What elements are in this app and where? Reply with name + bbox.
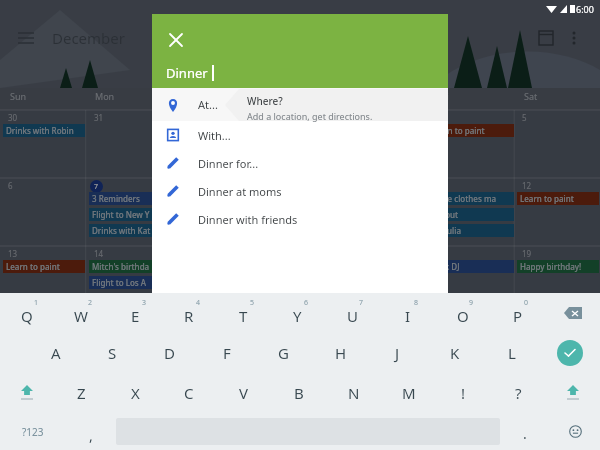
staticText: Flight to New Y bbox=[92, 209, 150, 220]
button[interactable]: Shift bbox=[0, 373, 54, 413]
button[interactable]: Dinner with friends bbox=[152, 205, 448, 233]
staticText: Sun bbox=[10, 90, 27, 102]
staticText: J bbox=[395, 343, 400, 363]
button[interactable]: G bbox=[255, 333, 312, 373]
staticText: Dinner bbox=[166, 64, 208, 82]
button[interactable]: K bbox=[426, 333, 483, 373]
staticText: U bbox=[347, 306, 358, 326]
staticText: S bbox=[108, 343, 117, 363]
button[interactable]: With... bbox=[152, 121, 448, 149]
staticText: 6 bbox=[8, 180, 13, 191]
staticText: Learn to paint bbox=[520, 193, 574, 204]
staticText: O bbox=[457, 306, 469, 326]
button[interactable]: Y bbox=[270, 293, 325, 333]
staticText: M bbox=[402, 383, 416, 403]
button[interactable]: Today bbox=[532, 24, 560, 52]
button[interactable]: Q bbox=[0, 293, 54, 333]
staticText: Mitch's birthda bbox=[92, 261, 150, 272]
staticText: 14 bbox=[94, 248, 104, 259]
button[interactable]: H bbox=[312, 333, 369, 373]
button[interactable]: Emoji bbox=[550, 413, 600, 450]
button[interactable]: J bbox=[369, 333, 426, 373]
button[interactable]: Close bbox=[162, 26, 190, 54]
staticText: 9 bbox=[469, 298, 474, 308]
staticText: N bbox=[348, 383, 360, 403]
staticText: R bbox=[184, 306, 194, 326]
staticText: 31 bbox=[94, 112, 104, 123]
button[interactable]: More options bbox=[560, 24, 588, 52]
button[interactable]: V bbox=[216, 373, 271, 413]
button[interactable]: Done bbox=[540, 333, 600, 373]
staticText: Dinner with friends bbox=[198, 212, 298, 227]
button[interactable]: S bbox=[84, 333, 141, 373]
staticText: ? bbox=[515, 383, 522, 403]
button[interactable]: L bbox=[483, 333, 540, 373]
button[interactable]: A bbox=[27, 333, 84, 373]
button[interactable]: ?123 bbox=[0, 413, 66, 450]
button[interactable]: U bbox=[325, 293, 380, 333]
staticText: X bbox=[131, 383, 140, 403]
staticText: , bbox=[89, 426, 93, 445]
button[interactable]: O bbox=[435, 293, 490, 333]
button[interactable]: B bbox=[271, 373, 326, 413]
button[interactable]: , bbox=[66, 413, 116, 450]
staticText: . bbox=[523, 424, 527, 443]
button[interactable]: N bbox=[326, 373, 381, 413]
staticText: 30 bbox=[8, 112, 18, 123]
staticText: I bbox=[405, 306, 411, 326]
staticText: Fri bbox=[438, 90, 449, 102]
staticText: et Julia bbox=[435, 225, 461, 236]
staticText: Dinner at moms bbox=[198, 184, 282, 199]
staticText: C bbox=[184, 383, 194, 403]
staticText: 3 bbox=[142, 298, 147, 308]
staticText: 4 bbox=[196, 298, 201, 308]
staticText: Wed bbox=[266, 90, 285, 102]
button[interactable]: D bbox=[141, 333, 198, 373]
staticText: E bbox=[131, 306, 140, 326]
staticText: Sat bbox=[524, 90, 538, 102]
staticText: H bbox=[335, 343, 347, 363]
button[interactable]: ? bbox=[491, 373, 546, 413]
staticText: Dinner for... bbox=[198, 156, 259, 171]
staticText: 13 bbox=[8, 248, 18, 259]
button[interactable]: Backspace bbox=[545, 293, 600, 333]
staticText: Flight to Los A bbox=[92, 277, 147, 288]
staticText: ook DJ bbox=[435, 261, 460, 272]
staticText: W bbox=[74, 306, 88, 326]
staticText: L bbox=[508, 343, 516, 363]
button[interactable]: . bbox=[500, 413, 550, 450]
button[interactable]: Dinner for... bbox=[152, 149, 448, 177]
button[interactable]: E bbox=[108, 293, 162, 333]
staticText: tage clothes ma bbox=[435, 193, 497, 204]
button[interactable]: Shift bbox=[546, 373, 600, 413]
button[interactable]: F bbox=[198, 333, 255, 373]
staticText: December bbox=[52, 28, 125, 48]
staticText: 12 bbox=[522, 180, 532, 191]
button[interactable]: At... bbox=[152, 88, 448, 121]
button[interactable]: Z bbox=[54, 373, 108, 413]
button[interactable]: X bbox=[108, 373, 162, 413]
staticText: 7 bbox=[359, 298, 364, 308]
button[interactable]: C bbox=[162, 373, 216, 413]
button[interactable]: M bbox=[381, 373, 436, 413]
staticText: 6:00 bbox=[576, 3, 594, 15]
staticText: 1 bbox=[34, 298, 39, 308]
button[interactable]: I bbox=[380, 293, 435, 333]
button[interactable]: T bbox=[216, 293, 270, 333]
staticText: 6 bbox=[304, 298, 309, 308]
staticText: Q bbox=[21, 306, 33, 326]
staticText: A bbox=[51, 343, 61, 363]
button[interactable]: ! bbox=[436, 373, 491, 413]
button[interactable]: R bbox=[162, 293, 216, 333]
staticText: 7 bbox=[94, 182, 99, 192]
staticText: Z bbox=[77, 383, 86, 403]
staticText: D bbox=[164, 343, 175, 363]
button[interactable]: P bbox=[490, 293, 545, 333]
button[interactable]: Dinner at moms bbox=[152, 177, 448, 205]
button[interactable]: Menu bbox=[12, 24, 40, 52]
button[interactable]: W bbox=[54, 293, 108, 333]
staticText: Mon bbox=[95, 90, 115, 102]
staticText: Where? bbox=[247, 94, 283, 108]
staticText: ?123 bbox=[22, 425, 44, 439]
